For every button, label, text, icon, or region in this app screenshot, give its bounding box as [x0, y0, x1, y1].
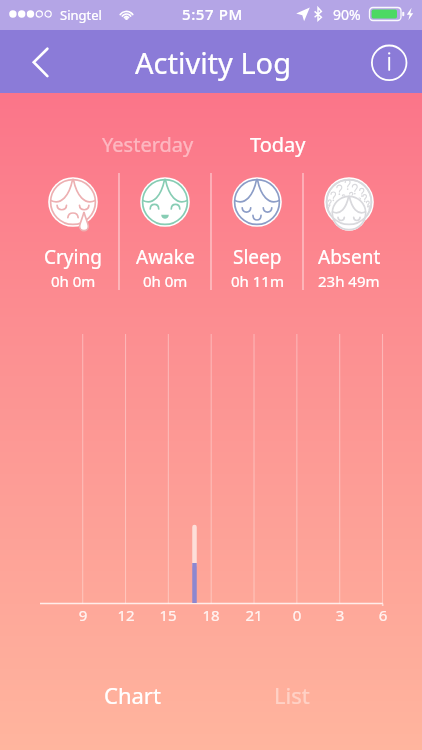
button[interactable]: Chart — [52, 660, 212, 730]
staticText: Singtel — [60, 6, 102, 24]
staticText: 15 — [154, 605, 182, 625]
staticText: 90% — [333, 5, 361, 24]
staticText: 0 — [283, 605, 311, 625]
staticText: 0h 0m — [143, 271, 188, 291]
button[interactable]: Absent — [303, 172, 395, 292]
staticText: Crying — [44, 244, 102, 270]
staticText: 9 — [69, 605, 97, 625]
staticText: Yesterday — [102, 131, 194, 158]
staticText: Activity Log — [135, 43, 291, 82]
staticText: 3 — [326, 605, 354, 625]
staticText: Awake — [136, 244, 195, 270]
staticText: List — [274, 680, 310, 710]
button[interactable]: Info — [368, 42, 410, 84]
button[interactable]: Sleep — [211, 172, 303, 292]
button[interactable]: Awake — [119, 172, 211, 292]
button[interactable]: Crying — [27, 172, 119, 292]
button[interactable]: List — [212, 660, 372, 730]
staticText: 18 — [197, 605, 225, 625]
staticText: Chart — [104, 680, 161, 710]
button[interactable]: Back — [20, 42, 60, 82]
staticText: 12 — [112, 605, 140, 625]
staticText: Absent — [318, 244, 381, 270]
staticText: 0h 11m — [231, 271, 284, 291]
staticText: Today — [250, 131, 306, 158]
staticText: Sleep — [233, 244, 282, 270]
staticText: 21 — [240, 605, 268, 625]
staticText: 5:57 PM — [182, 4, 243, 24]
staticText: 6 — [369, 605, 397, 625]
staticText: 23h 49m — [318, 271, 380, 291]
staticText: 0h 0m — [51, 271, 96, 291]
